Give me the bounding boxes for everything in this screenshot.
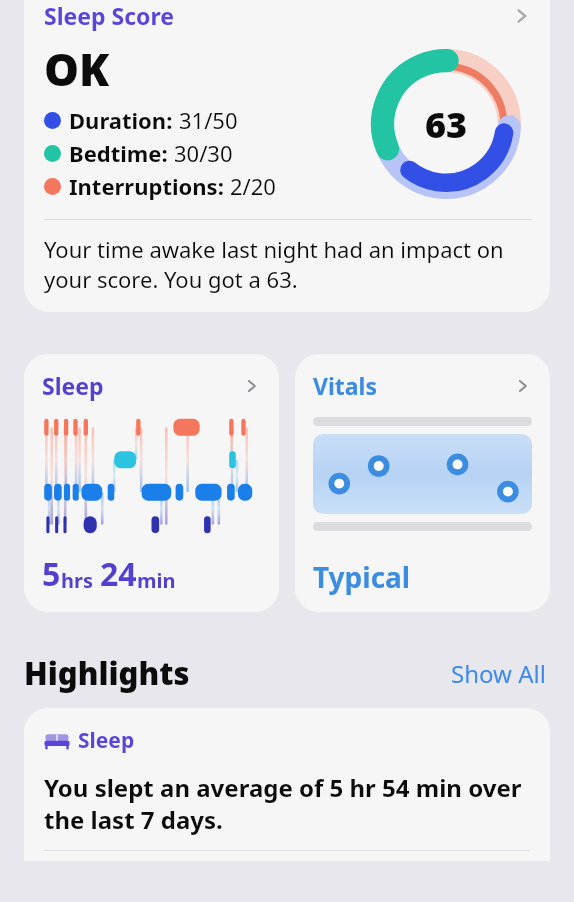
- staticText: Vitals: [313, 370, 377, 401]
- other: Open sleep score details: [512, 6, 532, 26]
- staticText: min: [137, 567, 176, 594]
- staticText: OK: [44, 39, 110, 99]
- staticText: You slept an average of 5 hr 54 min over…: [44, 771, 530, 836]
- staticText: 24: [100, 552, 137, 596]
- staticText: 30/30: [174, 138, 233, 168]
- staticText: Your time awake last night had an impact…: [44, 234, 532, 294]
- staticText: 5: [42, 552, 61, 596]
- staticText: Bedtime:: [69, 138, 174, 168]
- button[interactable]: Sleep: [24, 708, 550, 861]
- staticText: Highlights: [24, 652, 190, 694]
- button[interactable]: Sleep: [24, 354, 279, 612]
- staticText: 2/20: [230, 171, 276, 201]
- button[interactable]: Sleep Score: [24, 0, 550, 312]
- staticText: 31/50: [179, 105, 238, 135]
- staticText: Sleep: [78, 726, 135, 755]
- staticText: Duration:: [69, 105, 179, 135]
- staticText: Sleep: [42, 370, 104, 401]
- staticText: Show All: [451, 657, 546, 690]
- button[interactable]: Vitals: [295, 354, 550, 612]
- staticText: Interruptions:: [69, 171, 230, 201]
- button[interactable]: Show All: [447, 653, 550, 694]
- staticText: Typical: [313, 558, 411, 596]
- staticText: Sleep Score: [44, 0, 174, 31]
- staticText: hrs: [61, 567, 93, 594]
- staticText: 63: [425, 100, 468, 149]
